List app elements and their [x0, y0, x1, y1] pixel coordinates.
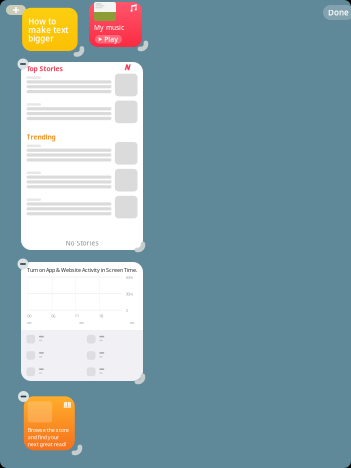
staticText: Turn on App & Website Activity in Screen… — [27, 266, 137, 273]
staticText: 0 — [125, 308, 127, 313]
button[interactable]: Add widget — [6, 5, 26, 15]
staticText: 00 — [27, 313, 31, 318]
staticText: 18 — [99, 313, 103, 318]
button[interactable]: Remove widget — [17, 258, 28, 269]
staticText: 60m — [125, 275, 133, 280]
button[interactable]: Done — [323, 5, 351, 20]
staticText: How to — [28, 16, 56, 27]
staticText: bigger — [28, 33, 53, 44]
button[interactable]: Remove widget — [17, 58, 28, 69]
button[interactable]: How to — [22, 8, 78, 51]
staticText: 12 — [75, 313, 79, 318]
button[interactable]: Remove widget — [18, 391, 29, 402]
staticText: Done — [328, 7, 349, 18]
button[interactable]: Browse the store and find your next grea… — [24, 396, 75, 450]
staticText: Browse the store and find your next grea… — [28, 426, 69, 448]
staticText: Top Stories — [26, 64, 62, 73]
button[interactable]: Turn on App & Website Activity in Screen… — [21, 262, 143, 381]
button[interactable]: My music — [89, 2, 142, 47]
staticText: Play — [104, 35, 118, 44]
staticText: 30m — [125, 291, 133, 296]
button[interactable]: Top Stories — [21, 62, 143, 250]
staticText: No Stories — [65, 238, 98, 247]
staticText: make text — [28, 25, 68, 35]
staticText: Trending — [26, 132, 55, 141]
staticText: 06 — [51, 313, 55, 318]
staticText: My music — [94, 23, 124, 32]
